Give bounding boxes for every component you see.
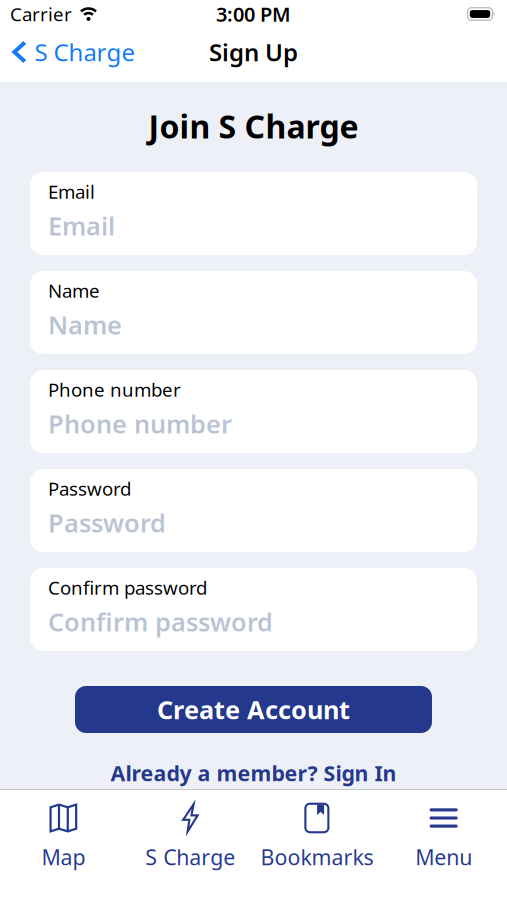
staticText: Phone number xyxy=(48,377,181,402)
button[interactable]: Menu xyxy=(380,803,507,866)
staticText: S Charge xyxy=(34,36,135,68)
button[interactable]: Bookmarks xyxy=(253,803,380,866)
staticText: Password xyxy=(48,506,166,539)
staticText: Email xyxy=(48,209,115,242)
button[interactable]: Confirm password xyxy=(30,568,477,651)
staticText: Email xyxy=(48,179,95,204)
staticText: Confirm password xyxy=(48,605,273,638)
button[interactable]: Email xyxy=(30,172,477,255)
staticText: Confirm password xyxy=(48,575,207,600)
button[interactable]: Name xyxy=(30,271,477,354)
button[interactable]: S Charge xyxy=(127,803,254,866)
staticText: Password xyxy=(48,476,131,501)
staticText: S Charge xyxy=(145,843,235,871)
staticText: Already a member? Sign In xyxy=(110,759,396,787)
button[interactable]: Create Account xyxy=(75,686,432,733)
staticText: Carrier xyxy=(10,2,72,26)
staticText: Name xyxy=(48,308,122,341)
button[interactable]: Password xyxy=(30,469,477,552)
button[interactable]: Already a member? Sign In xyxy=(110,759,396,787)
staticText: Menu xyxy=(415,843,472,871)
staticText: Join S Charge xyxy=(148,105,358,147)
staticText: 3:00 PM xyxy=(216,1,291,27)
staticText: Bookmarks xyxy=(260,843,373,871)
staticText: Sign Up xyxy=(209,36,298,68)
button[interactable]: Back xyxy=(12,36,135,68)
staticText: Create Account xyxy=(157,693,350,726)
button[interactable]: Phone number xyxy=(30,370,477,453)
button[interactable]: Map xyxy=(0,803,127,866)
staticText: Name xyxy=(48,278,100,303)
staticText: Map xyxy=(41,843,85,871)
staticText: Phone number xyxy=(48,407,232,440)
